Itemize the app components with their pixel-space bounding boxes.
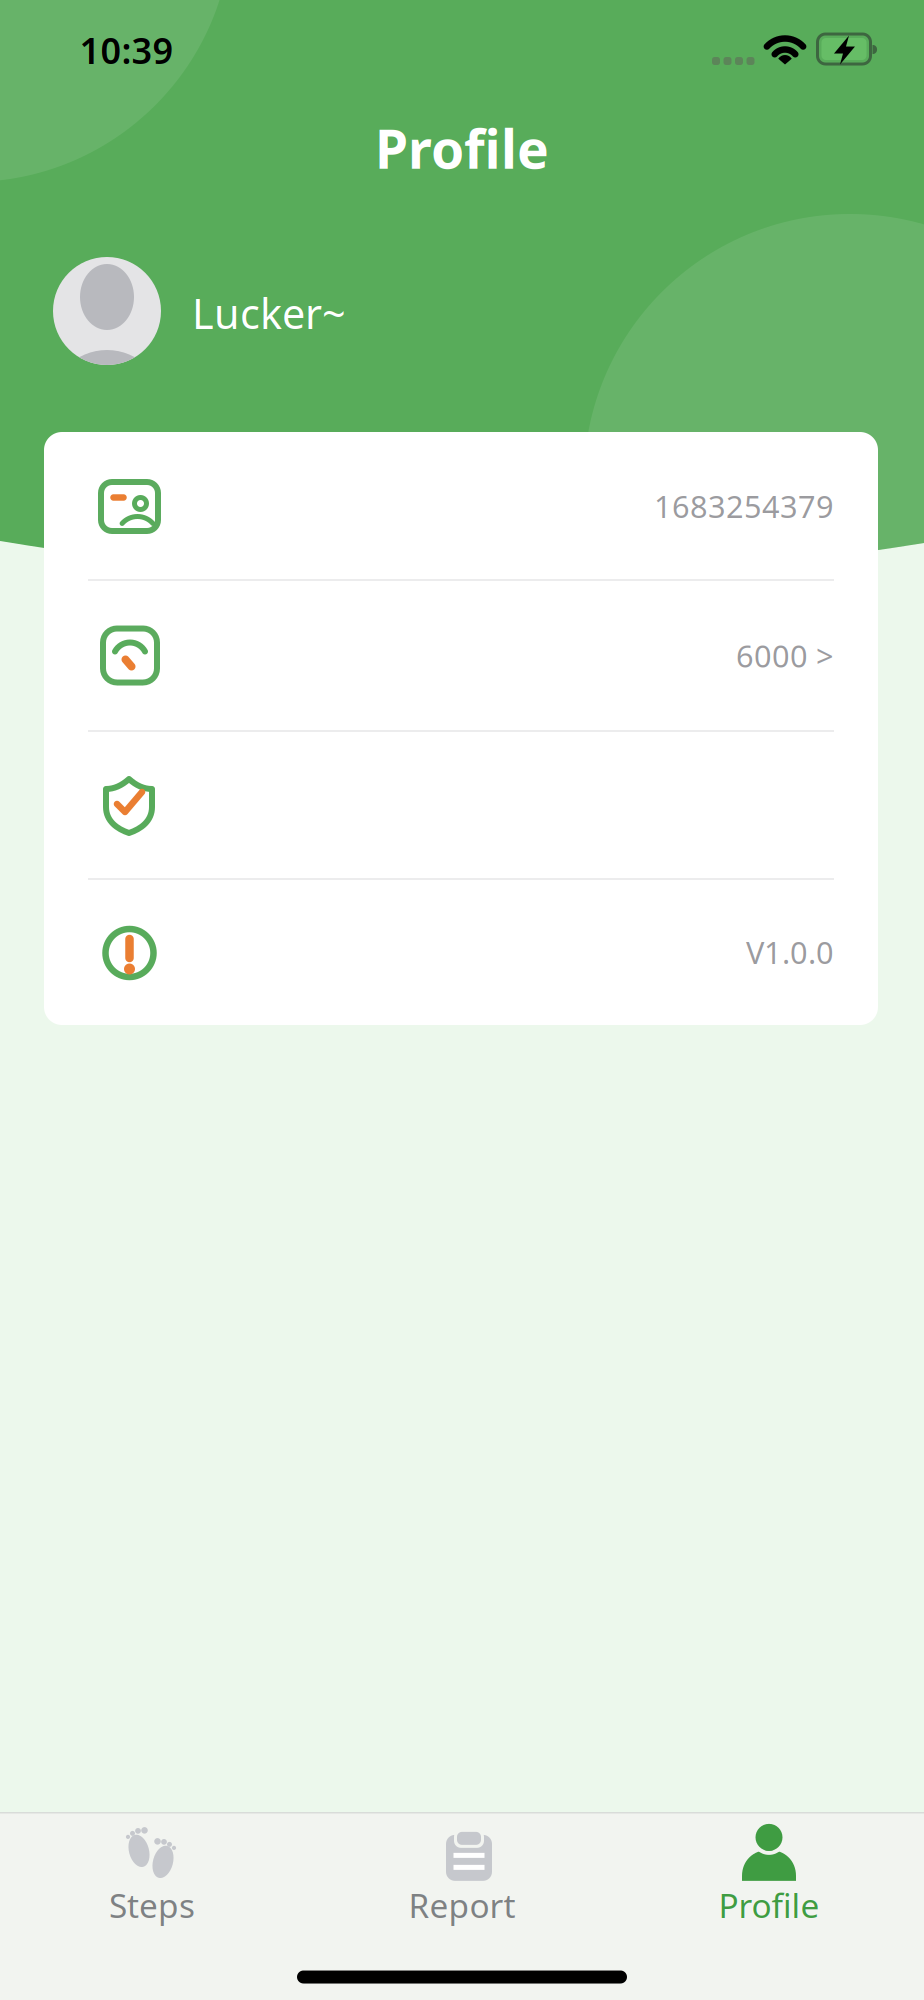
staticText: Report <box>408 1883 515 1927</box>
staticText: Profile <box>718 1883 819 1927</box>
button[interactable]: Steps <box>22 1811 282 1941</box>
button[interactable]: Version V1.0.0 <box>44 879 878 1025</box>
button[interactable]: Report <box>332 1811 592 1941</box>
staticText: V1.0.0 <box>746 932 834 972</box>
staticText: 10:39 <box>79 26 173 74</box>
button[interactable]: Step goal 6000 <box>44 580 878 731</box>
staticText: 1683254379 <box>654 486 834 526</box>
staticText: 6000 > <box>736 635 834 676</box>
staticText: Steps <box>109 1883 195 1927</box>
staticText: Profile <box>375 113 549 183</box>
button[interactable]: Profile <box>639 1811 899 1941</box>
button[interactable]: User ID 1683254379 <box>44 432 878 580</box>
button[interactable]: Privacy <box>44 731 878 879</box>
staticText: Lucker~ <box>192 286 346 340</box>
button[interactable]: Profile photo <box>53 257 161 365</box>
